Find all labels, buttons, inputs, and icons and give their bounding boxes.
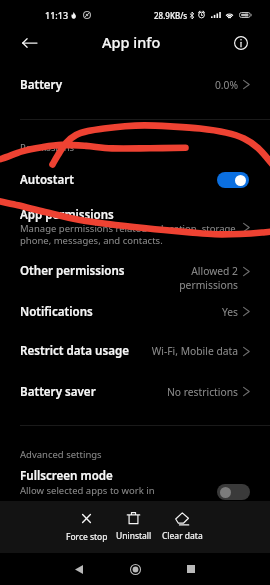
other: Open — [242, 223, 251, 232]
staticText: Clear data — [162, 530, 203, 542]
staticText: Notifications — [20, 304, 93, 320]
staticText: Autostart — [20, 172, 74, 188]
staticText: Manage permissions related to location, … — [20, 222, 236, 247]
button[interactable]: Autostart — [0, 160, 270, 192]
button[interactable]: Back — [13, 27, 45, 59]
staticText: App permissions — [20, 207, 114, 223]
staticText: No restrictions — [130, 385, 238, 399]
staticText: Fullscreen mode — [20, 468, 113, 484]
other: Open — [242, 307, 251, 316]
button[interactable]: App details — [225, 27, 257, 59]
staticText: Uninstall — [116, 530, 152, 542]
button[interactable]: Other permissions — [0, 247, 270, 287]
other: Open — [242, 80, 251, 89]
staticText: App info — [102, 32, 161, 52]
staticText: Battery — [20, 77, 63, 93]
button[interactable]: Recents — [175, 553, 207, 585]
button[interactable]: Fullscreen mode — [0, 464, 270, 500]
staticText: Wi-Fi, Mobile data — [130, 344, 238, 358]
button[interactable]: Battery saver — [0, 368, 270, 408]
staticText: Force stop — [66, 531, 108, 543]
staticText: Yes — [130, 305, 238, 319]
button[interactable]: Force stop — [62, 501, 111, 553]
button[interactable]: Battery — [0, 61, 270, 101]
staticText: 28.9KB/s — [154, 10, 188, 21]
staticText: 0.0% — [130, 78, 238, 92]
other: Open — [242, 347, 251, 356]
other: Open — [242, 267, 251, 276]
button[interactable]: Notifications — [0, 288, 270, 328]
button[interactable]: Uninstall — [111, 501, 156, 553]
button[interactable]: Home — [119, 553, 151, 585]
button[interactable]: Clear data — [158, 501, 206, 553]
staticText: Other permissions — [20, 263, 125, 279]
staticText: Permissions — [20, 141, 75, 154]
staticText: Allowed 2 permissions — [130, 264, 238, 292]
other: Open — [242, 387, 251, 396]
button[interactable]: Restrict data usage — [0, 327, 270, 367]
staticText: Advanced settings — [20, 448, 102, 461]
staticText: 11:13 — [45, 9, 69, 21]
button[interactable]: App permissions — [0, 203, 270, 248]
button[interactable]: Back — [63, 553, 95, 585]
staticText: Restrict data usage — [20, 343, 129, 359]
staticText: Battery saver — [20, 384, 96, 400]
staticText: Allow selected apps to work in — [20, 484, 155, 497]
